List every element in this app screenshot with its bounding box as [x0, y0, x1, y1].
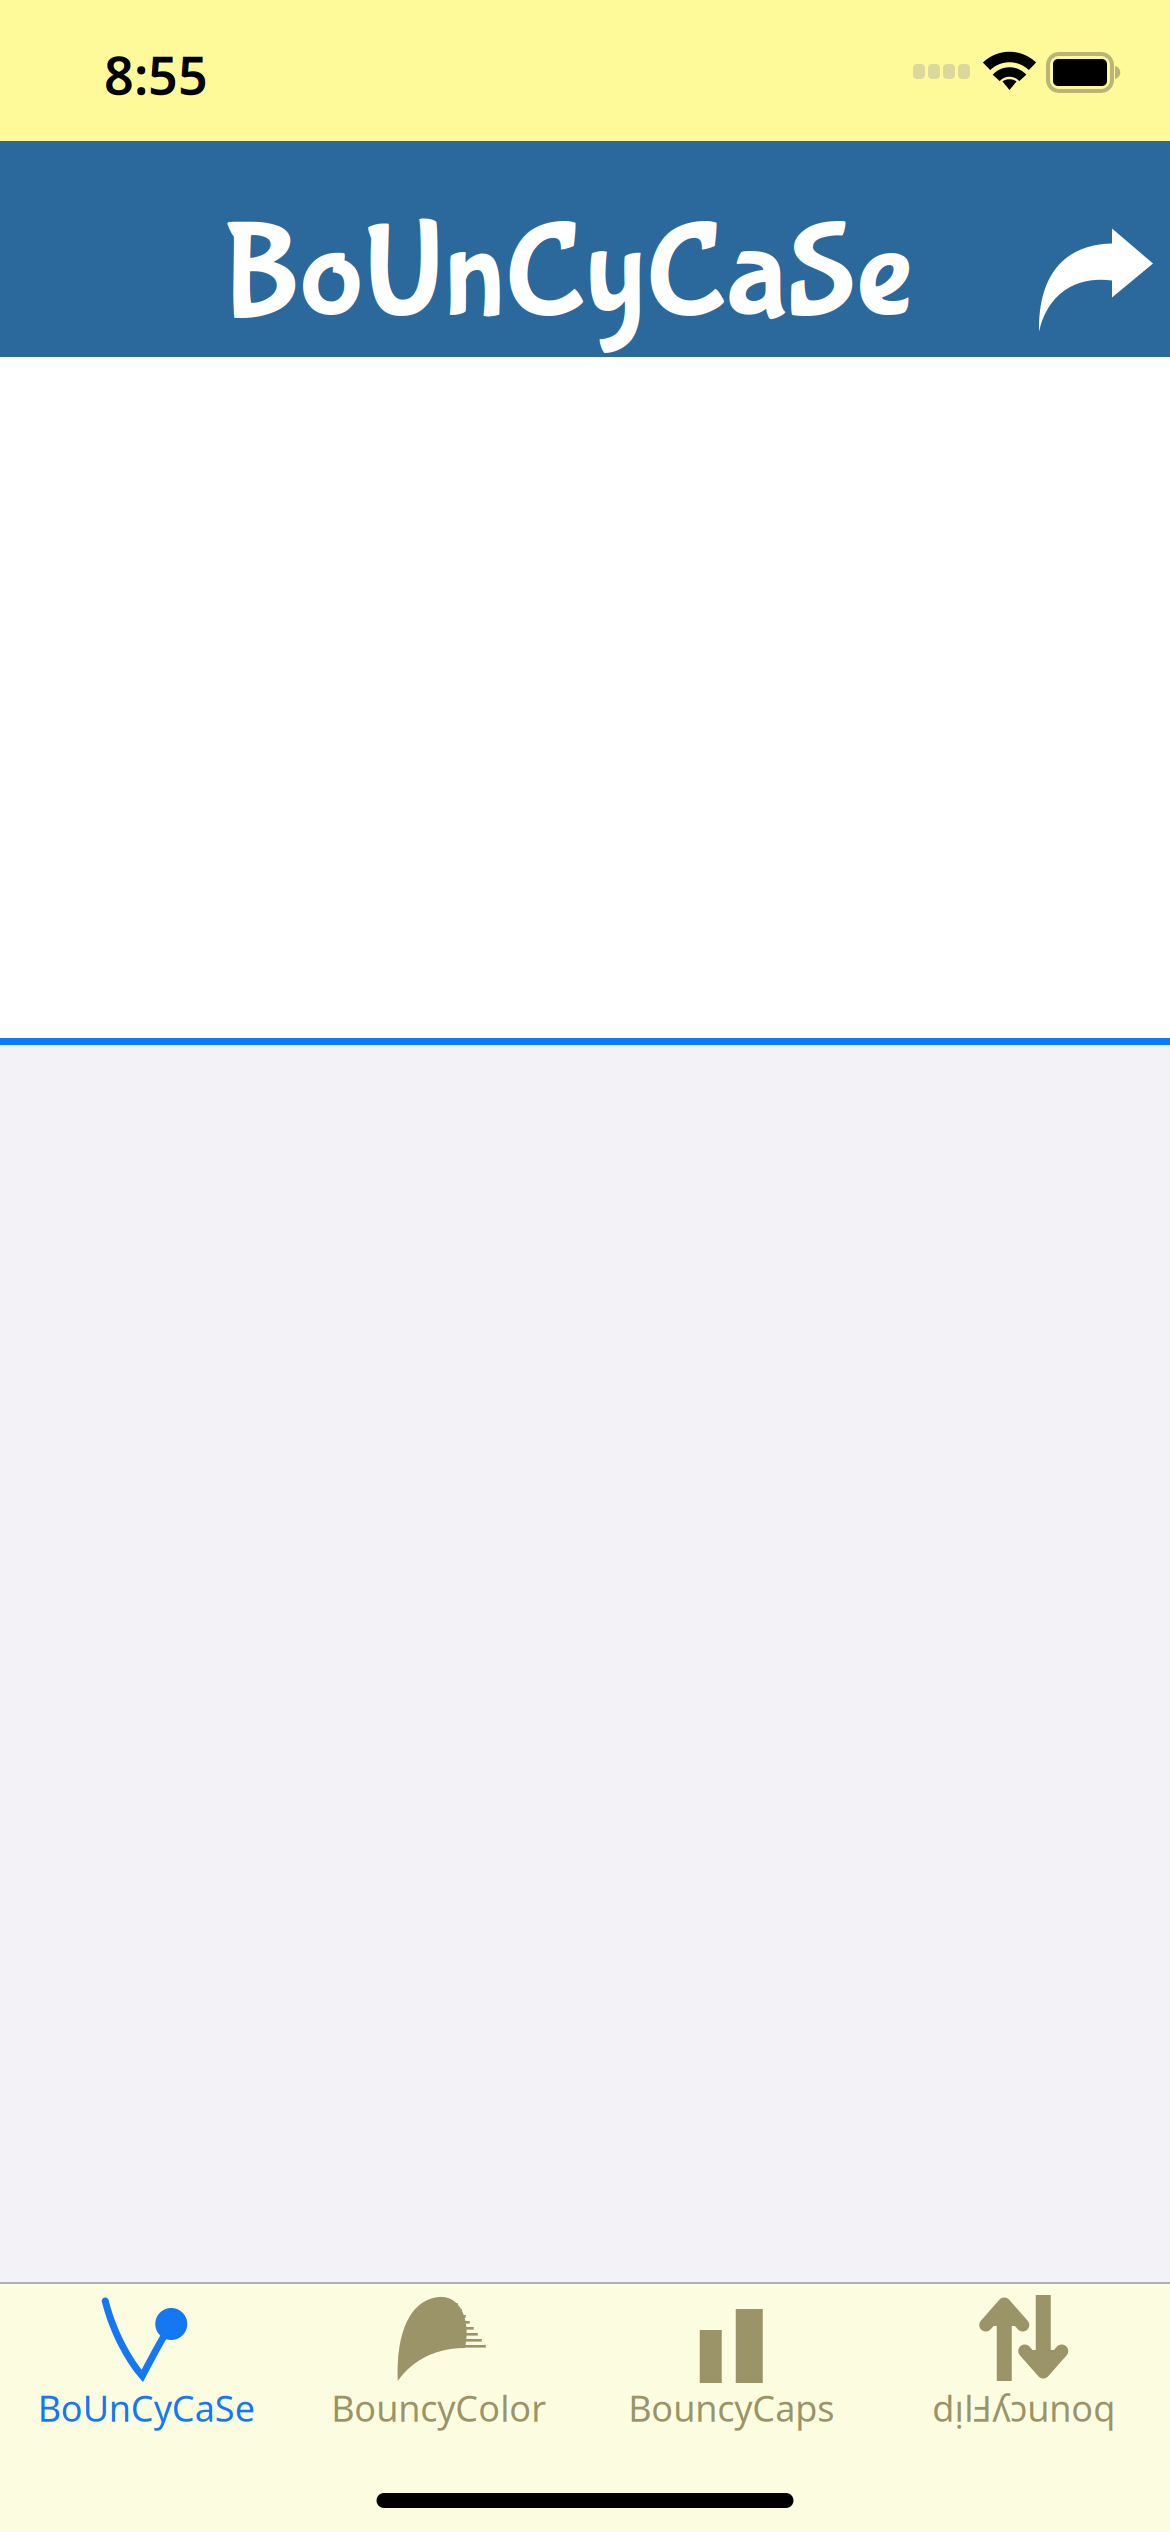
staticText: BouncyColor: [331, 2384, 546, 2432]
button[interactable]: BouncyCaps: [585, 2284, 877, 2432]
staticText: BouncyCaps: [628, 2384, 834, 2432]
button[interactable]: BoUnCyCaSe: [0, 2284, 292, 2432]
staticText: BoUnCyCaSe: [38, 2384, 255, 2432]
button[interactable]: Share: [1028, 214, 1160, 346]
staticText: dᴉlℲʎɔunoq: [932, 2384, 1115, 2432]
button[interactable]: Text to transform: [0, 357, 1170, 1045]
staticText: BoUnCyCaSe: [222, 198, 912, 354]
button[interactable]: BouncyFlip: [877, 2284, 1170, 2432]
button[interactable]: BouncyColor: [292, 2284, 585, 2432]
staticText: 8:55: [104, 40, 208, 109]
